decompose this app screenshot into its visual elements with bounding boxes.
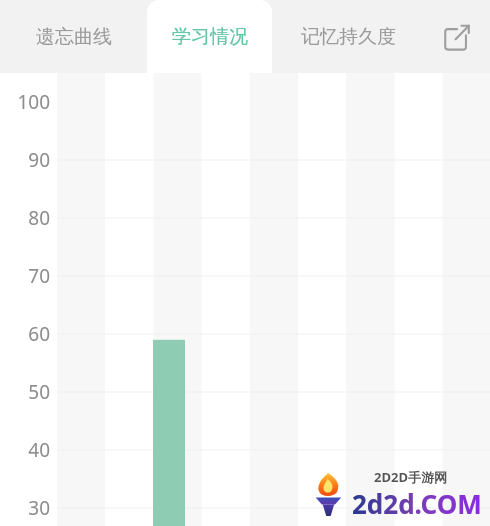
staticText: 记忆持久度: [301, 25, 396, 49]
staticText: 40: [28, 437, 50, 463]
staticText: 90: [28, 147, 50, 173]
button[interactable]: Share: [424, 0, 490, 73]
button[interactable]: 遗忘曲线: [0, 0, 147, 73]
staticText: 30: [28, 495, 50, 521]
staticText: 2d2d.COM: [352, 486, 482, 521]
staticText: 2D2D手游网: [374, 468, 447, 486]
button[interactable]: 记忆持久度: [272, 0, 424, 73]
staticText: 100: [17, 89, 50, 115]
staticText: 遗忘曲线: [36, 25, 112, 49]
staticText: 50: [28, 379, 50, 405]
staticText: 学习情况: [172, 25, 248, 49]
staticText: 70: [28, 263, 50, 289]
button[interactable]: 学习情况: [147, 0, 272, 73]
staticText: 80: [28, 205, 50, 231]
staticText: 60: [28, 321, 50, 347]
